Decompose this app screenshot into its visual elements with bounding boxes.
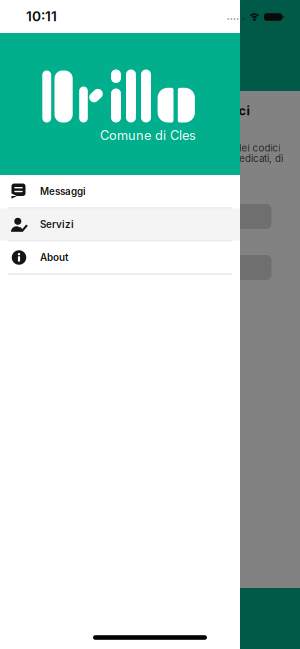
- staticText: About: [40, 251, 68, 263]
- staticText: Messaggi: [40, 185, 86, 197]
- button[interactable]: About: [0, 241, 240, 273]
- staticText: Qui puoi effettuare l'inserimento dei co…: [83, 142, 280, 154]
- staticText: 10:11: [26, 8, 57, 24]
- button[interactable]: Servizi: [0, 208, 240, 240]
- staticText: Servizi: [40, 218, 74, 230]
- staticText: Inserimento dei codici: [110, 103, 249, 118]
- button[interactable]: Messaggi: [0, 175, 240, 207]
- staticText: Comune di Cles: [100, 128, 196, 143]
- button[interactable]: Chiudi menu: [0, 0, 300, 649]
- staticText: relativi ai servizi a te dedicati, di: [139, 153, 283, 164]
